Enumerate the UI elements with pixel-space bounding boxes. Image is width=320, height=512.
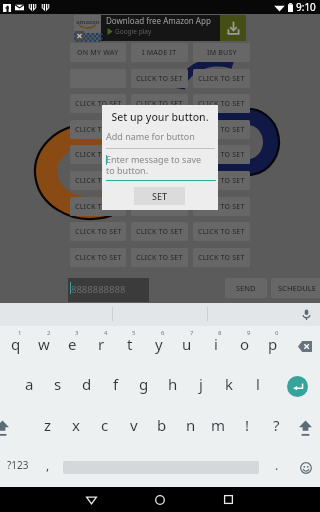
button[interactable]: CLICK TO SET [193,94,250,113]
staticText: i [214,334,218,354]
staticText: CLICK TO SET [198,125,245,135]
button[interactable]: CLICK TO SET [131,222,188,241]
button[interactable]: Shift [0,407,16,448]
button[interactable]: Voice input [292,303,320,326]
button[interactable]: CLICK TO SET [70,222,126,241]
staticText: 5 [132,329,136,337]
staticText: u [182,334,192,354]
button[interactable]: f [101,366,130,407]
staticText: SCHEDULE [278,283,316,293]
button[interactable]: CLICK TO SET [131,120,188,139]
button[interactable]: CLICK TO SET [131,69,188,88]
button[interactable]: ? [262,407,291,448]
button[interactable]: ON MY WAY [70,43,126,62]
button[interactable]: CLICK TO SET [193,171,250,190]
button[interactable]: CLICK TO SET [131,197,188,216]
staticText: z [44,415,52,435]
button[interactable]: a [15,366,44,407]
button[interactable]: CLICK TO SET [193,197,250,216]
button[interactable]: k [215,366,244,407]
staticText: CLICK TO SET [198,202,245,212]
button[interactable]: Backspace [289,326,320,367]
button[interactable]: c [90,407,119,448]
button[interactable]: CLICK TO SET [70,248,126,267]
staticText: CLICK TO SET [198,176,245,186]
button[interactable]: j [186,366,215,407]
button[interactable]: Enter [281,366,313,407]
button[interactable]: CLICK TO SET [131,171,188,190]
button[interactable]: g [129,366,158,407]
button[interactable]: ?123 [0,447,36,488]
button[interactable]: Back [71,487,111,512]
button[interactable]: CLICK TO SET [70,171,126,190]
staticText: 7 [190,329,194,337]
button[interactable]: i [201,326,230,367]
button[interactable]: SEND [225,278,267,298]
button[interactable]: CLICK TO SET [193,120,250,139]
staticText: 2 [47,329,51,337]
button[interactable]: u [172,326,201,367]
button[interactable]: r [87,326,116,367]
button[interactable]: v [119,407,148,448]
staticText: Google play [115,27,152,36]
staticText: CLICK TO SET [136,253,183,263]
button[interactable]: CLICK TO SET [131,94,188,113]
button[interactable]: l [243,366,272,407]
button[interactable]: SCHEDULE [271,278,320,298]
button[interactable]: CLICK TO SET [70,120,126,139]
button[interactable]: t [115,326,144,367]
button[interactable]: CLICK TO SET [193,145,250,164]
staticText: SET [152,190,168,202]
button[interactable]: CLICK TO SET [193,222,250,241]
button[interactable]: h [158,366,187,407]
button[interactable]: CLICK TO SET [131,248,188,267]
button[interactable]: q [1,326,30,367]
button[interactable]: w [29,326,58,367]
button[interactable]: CLICK TO SET [131,145,188,164]
staticText: amazon [76,18,100,26]
button[interactable]: CLICK TO SET [70,94,126,113]
button[interactable]: Recent apps [208,487,248,512]
button[interactable]: e [58,326,87,367]
button[interactable]: p [258,326,287,367]
button[interactable]: Home [140,487,180,512]
button[interactable]: CLICK TO SET [193,248,250,267]
button[interactable]: d [72,366,101,407]
staticText: CLICK TO SET [75,150,122,160]
staticText: CLICK TO SET [75,99,122,109]
staticText: Add name for button [106,130,195,142]
button[interactable]: CLICK TO SET [70,197,126,216]
button[interactable]: I MADE IT [131,43,188,62]
staticText: I MADE IT [142,48,177,58]
button[interactable]: CLICK TO SET [70,145,126,164]
button[interactable]: y [144,326,173,367]
staticText: SEND [236,283,256,293]
button[interactable]: Shift [291,407,319,448]
button[interactable]: , [33,447,62,488]
button[interactable]: m [204,407,233,448]
staticText: CLICK TO SET [75,202,122,212]
staticText: CLICK TO SET [136,125,183,135]
staticText: ?123 [7,458,29,472]
button[interactable]: . [262,447,291,488]
staticText: s [54,374,62,394]
staticText: k [225,374,234,394]
button[interactable]: n [176,407,205,448]
button[interactable]: Emoji [291,447,320,488]
button[interactable]: s [43,366,72,407]
button[interactable]: IM BUSY [193,43,250,62]
button[interactable]: b [147,407,176,448]
button[interactable]: z [33,407,62,448]
staticText: n [186,415,196,435]
button[interactable]: SET [134,187,185,205]
staticText: y [155,334,163,354]
staticText: CLICK TO SET [75,176,122,186]
button[interactable]: x [61,407,90,448]
button[interactable]: ! [233,407,262,448]
staticText: j [199,374,203,394]
button[interactable]: CLICK TO SET [193,69,250,88]
button[interactable]: Download app [220,15,246,41]
button[interactable]: o [230,326,259,367]
